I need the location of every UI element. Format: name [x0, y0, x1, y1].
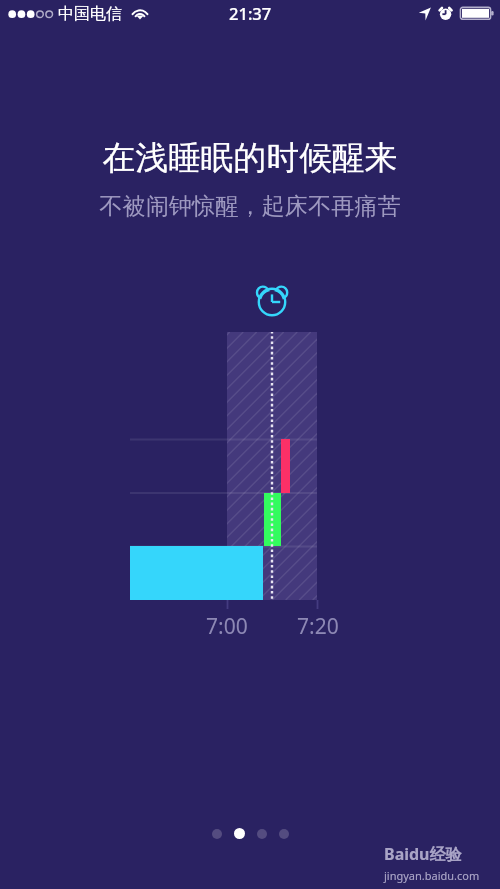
button[interactable]: Page 4 of 4 — [279, 829, 289, 839]
staticText: 7:00 — [206, 612, 248, 641]
staticText: 中国电信 — [58, 4, 122, 24]
button[interactable]: Page 3 of 4 — [257, 829, 267, 839]
staticText: 在浅睡眠的时候醒来 — [102, 137, 398, 178]
staticText: 7:20 — [297, 612, 339, 641]
button[interactable]: Page 2 of 4 — [234, 828, 245, 839]
button[interactable]: Smart alarm — [253, 283, 293, 323]
staticText: Baidu经验 — [384, 843, 462, 865]
staticText: 不被闹钟惊醒，起床不再痛苦 — [99, 192, 401, 221]
staticText: jingyan.baidu.com — [384, 868, 480, 883]
staticText: 21:37 — [229, 2, 272, 24]
button[interactable]: Page 1 of 4 — [212, 829, 222, 839]
